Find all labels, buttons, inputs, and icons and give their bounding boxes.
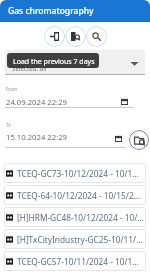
staticText: Gas chromatography [8,5,94,17]
staticText: [H]HRM-GC48-10/12/2024 - 10/… [17,212,144,223]
button[interactable]: Search records [129,130,149,150]
staticText: To [6,122,11,128]
staticText: Selected: all [12,64,47,72]
button[interactable]: Search [86,26,107,47]
staticText: [H]TxCityIndustry-GC25-10/11/… [17,234,143,245]
button[interactable]: Login [44,26,65,47]
button[interactable]: [H]TxCityIndustry-GC25-10/11/… [4,229,146,249]
staticText: From [6,86,18,92]
staticText: 15.10.2024 22:29 [6,132,67,142]
staticText: TCEQ-GC73-10/12/2024 - 10/1… [17,168,139,179]
button[interactable]: Report [65,26,86,47]
button[interactable]: Selected: all [5,50,145,75]
button[interactable]: [H]HRM-GC48-10/12/2024 - 10/… [4,207,146,227]
button[interactable]: TCEQ-64-10/12/2024 - 10/15/2… [4,185,146,205]
button[interactable]: TCEQ-GC73-10/12/2024 - 10/1… [4,163,146,183]
staticText: 24.09.2024 22:29 [6,97,67,107]
button[interactable]: TCEQ-GC57-10/11/2024 - 10/1… [4,251,146,271]
staticText: TCEQ-GC57-10/11/2024 - 10/1… [17,256,139,267]
staticText: Load the previous 7 days [13,57,95,67]
staticText: TCEQ-64-10/12/2024 - 10/15/2… [17,190,141,201]
